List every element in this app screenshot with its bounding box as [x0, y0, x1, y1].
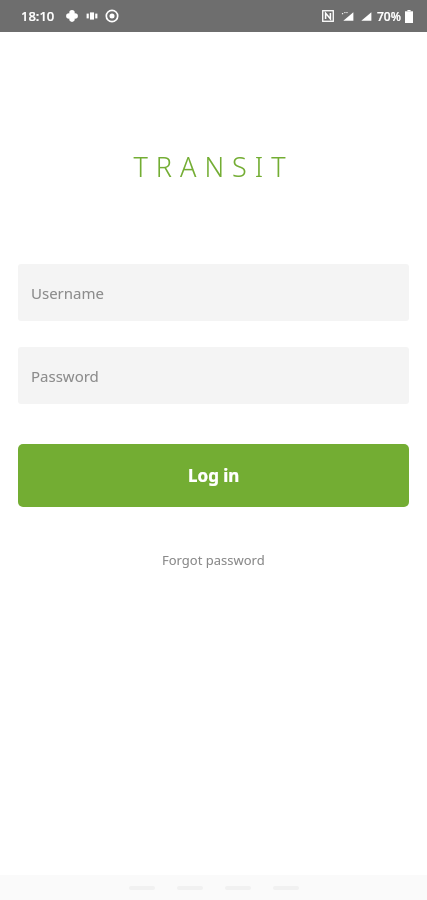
- staticText: 70%: [377, 8, 401, 24]
- staticText: Log in: [188, 464, 240, 487]
- staticText: 18:10: [21, 7, 55, 25]
- button[interactable]: Forgot password: [152, 545, 275, 575]
- staticText: Password: [31, 366, 99, 386]
- button[interactable]: Username: [18, 264, 409, 321]
- button[interactable]: Password: [18, 347, 409, 404]
- staticText: Forgot password: [162, 551, 265, 569]
- staticText: TRANSIT: [133, 148, 294, 185]
- staticText: Username: [31, 283, 104, 303]
- button[interactable]: Log in: [18, 444, 409, 507]
